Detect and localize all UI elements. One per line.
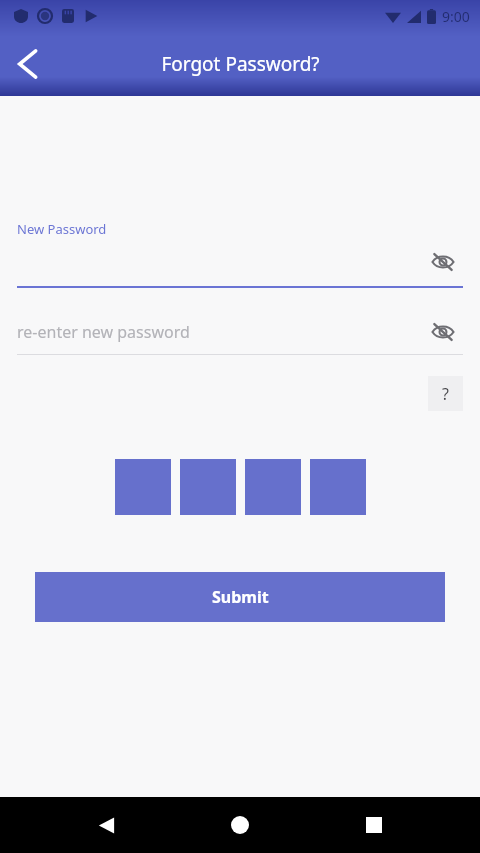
staticText: re-enter new password — [17, 321, 190, 343]
staticText: New Password — [17, 220, 107, 238]
button[interactable]: re-enter new password — [17, 310, 463, 355]
staticText: ? — [442, 383, 449, 405]
button[interactable]: Submit — [35, 572, 445, 622]
staticText: 9:00 — [442, 7, 470, 26]
button[interactable]: New Password — [17, 220, 463, 288]
staticText: Forgot Password? — [161, 51, 320, 77]
button[interactable]: Recent apps — [346, 797, 402, 853]
button[interactable]: Toggle confirm password visibility — [423, 312, 463, 352]
button[interactable]: Back — [78, 797, 134, 853]
staticText: Submit — [212, 586, 269, 608]
button[interactable]: Back — [4, 40, 52, 88]
button[interactable]: Toggle password visibility — [423, 242, 463, 282]
button[interactable]: Home — [212, 797, 268, 853]
button[interactable]: Help — [428, 376, 463, 411]
